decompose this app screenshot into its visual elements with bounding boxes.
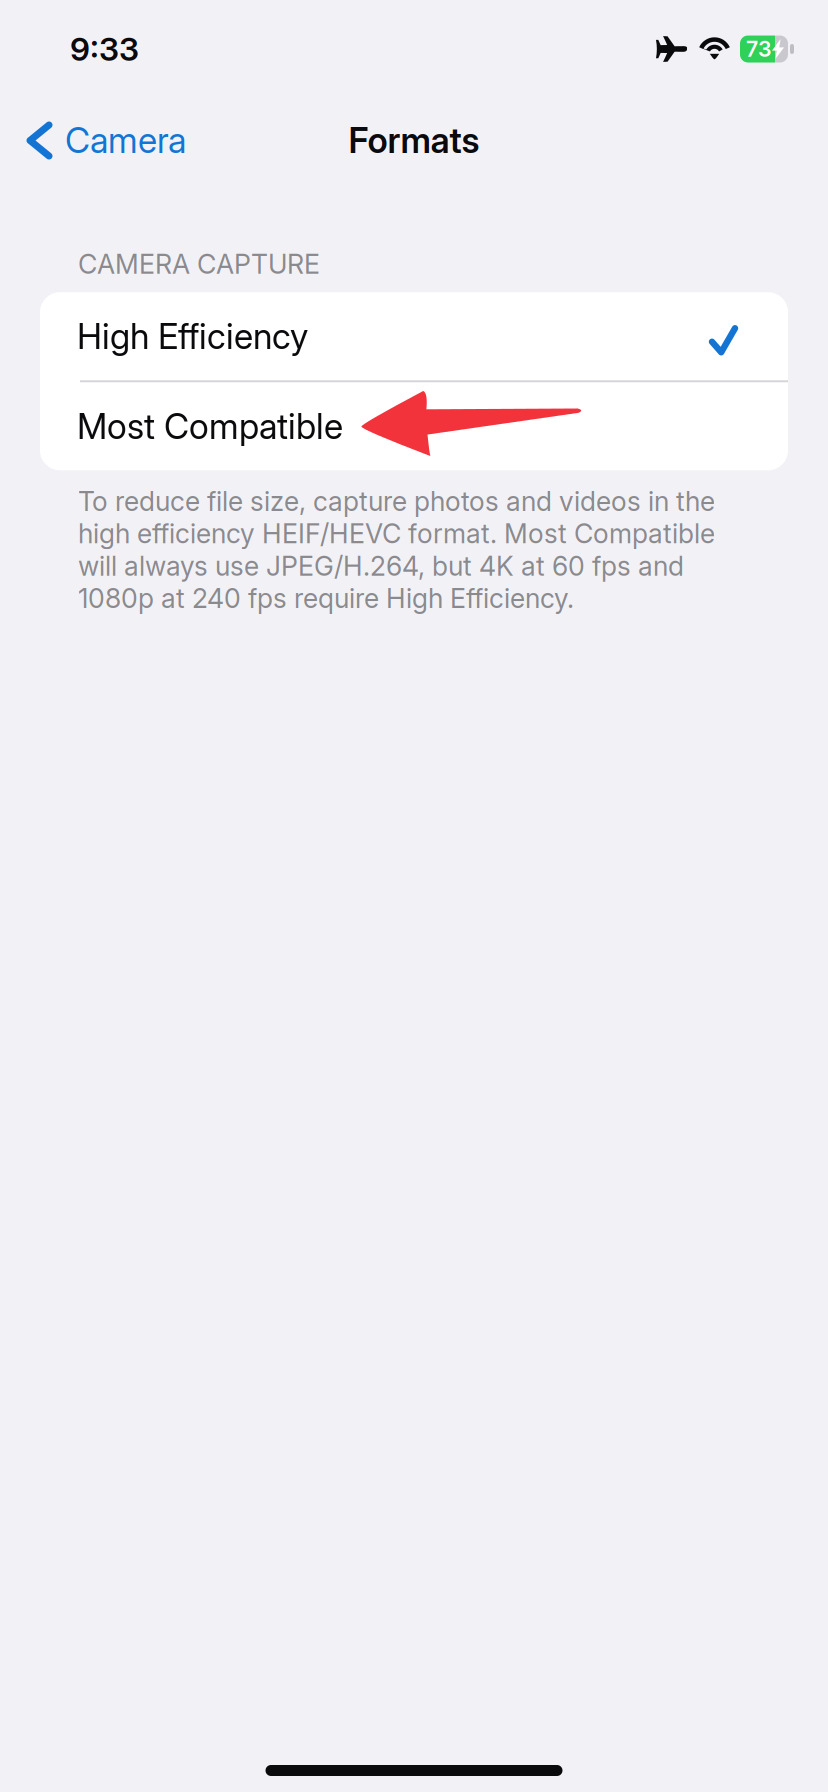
button[interactable]: Camera bbox=[0, 105, 204, 175]
staticText: 9:33 bbox=[70, 30, 139, 68]
staticText: 73 bbox=[746, 36, 772, 62]
staticText: CAMERA CAPTURE bbox=[78, 248, 320, 280]
button[interactable]: High Efficiency bbox=[40, 292, 788, 380]
staticText: Formats bbox=[348, 119, 479, 161]
staticText: To reduce file size, capture photos and … bbox=[78, 485, 715, 614]
staticText: Most Compatible bbox=[77, 405, 343, 447]
button[interactable]: Most Compatible bbox=[40, 382, 788, 470]
staticText: High Efficiency bbox=[77, 315, 308, 357]
staticText: Camera bbox=[65, 119, 186, 161]
